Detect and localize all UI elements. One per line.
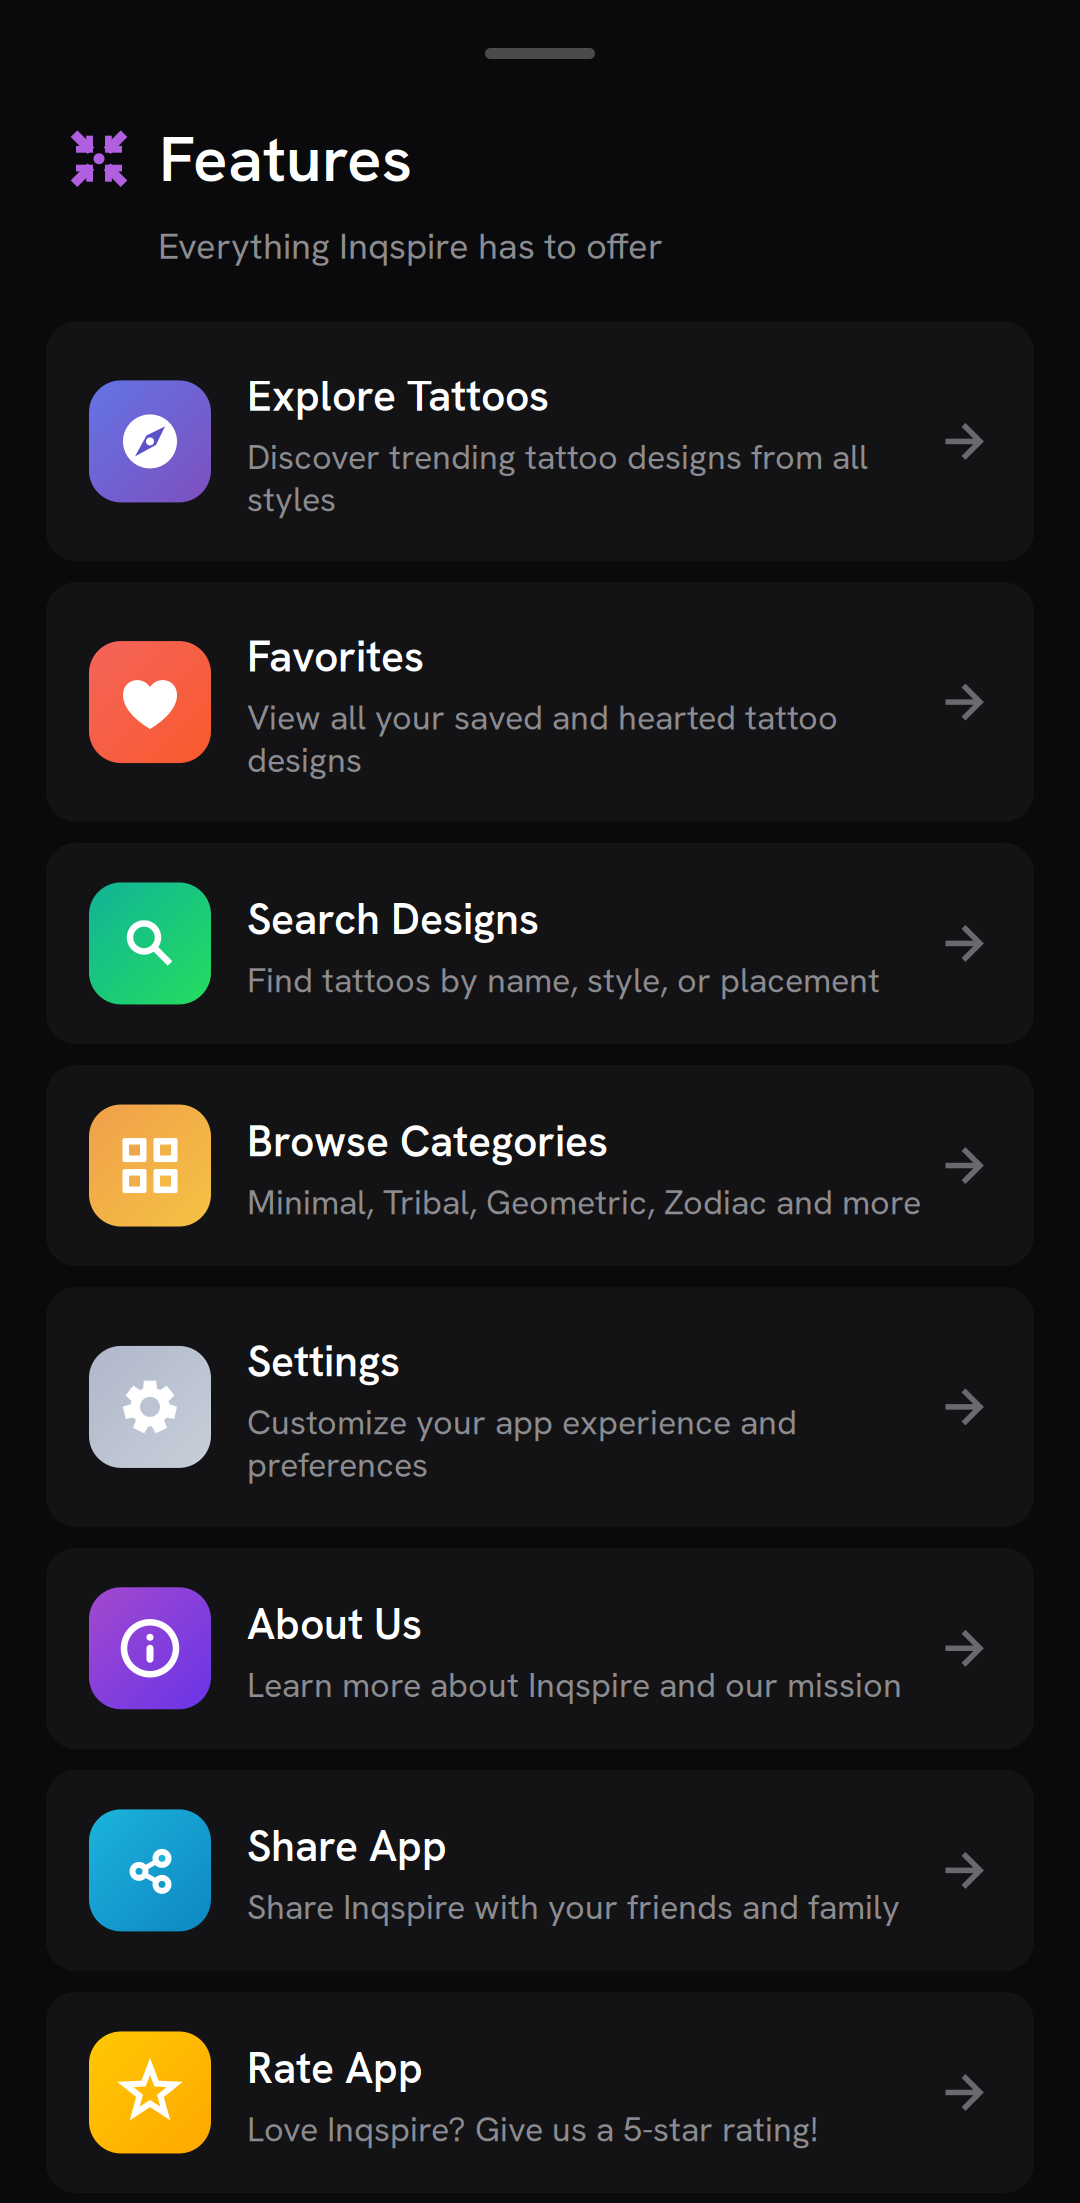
staticText: Favorites: [247, 629, 424, 684]
button[interactable]: Browse Categories: [46, 1065, 1034, 1266]
staticText: Browse Categories: [247, 1113, 608, 1169]
button[interactable]: Favorites: [46, 582, 1034, 822]
staticText: Learn more about Inqspire and our missio…: [247, 1663, 902, 1707]
button[interactable]: Explore Tattoos: [46, 322, 1034, 561]
staticText: Love Inqspire? Give us a 5-star rating!: [247, 2107, 818, 2151]
staticText: Share App: [247, 1818, 447, 1874]
staticText: Settings: [247, 1334, 400, 1389]
button[interactable]: Share App: [46, 1770, 1034, 1971]
staticText: Features: [159, 117, 412, 200]
button[interactable]: Settings: [46, 1287, 1034, 1527]
staticText: About Us: [247, 1596, 422, 1652]
button[interactable]: Rate App: [46, 1992, 1034, 2193]
staticText: Share Inqspire with your friends and fam…: [247, 1885, 900, 1929]
button[interactable]: Search Designs: [46, 843, 1034, 1044]
staticText: Customize your app experience and prefer…: [247, 1400, 797, 1487]
staticText: Find tattoos by name, style, or placemen…: [247, 958, 880, 1002]
staticText: Everything Inqspire has to offer: [158, 222, 663, 270]
button[interactable]: About Us: [46, 1548, 1034, 1749]
staticText: Search Designs: [247, 891, 539, 947]
staticText: Rate App: [247, 2040, 423, 2096]
staticText: Discover trending tattoo designs from al…: [247, 435, 868, 522]
staticText: Minimal, Tribal, Geometric, Zodiac and m…: [247, 1180, 921, 1225]
staticText: Explore Tattoos: [247, 368, 549, 424]
staticText: View all your saved and hearted tattoo d…: [247, 695, 838, 782]
